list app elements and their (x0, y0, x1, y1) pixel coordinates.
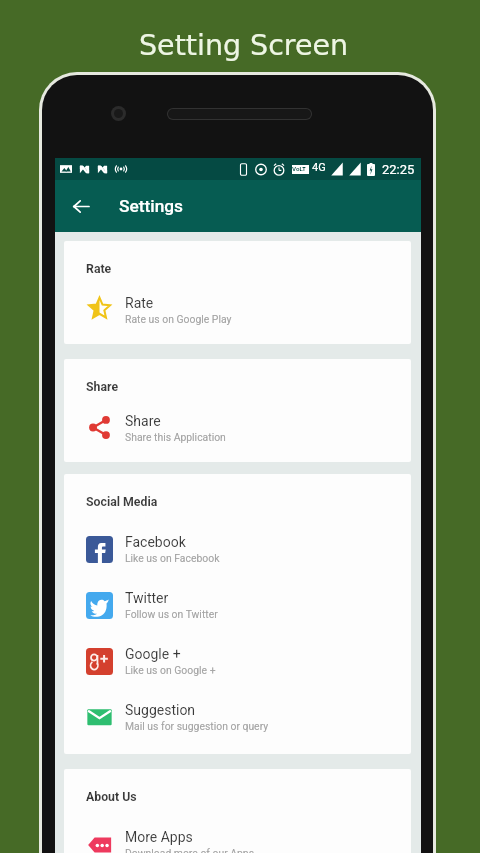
staticText: Like us on Facebook (125, 552, 220, 564)
staticText: Facebook (125, 534, 186, 550)
button[interactable]: Google + (64, 633, 411, 689)
staticText: Rate (125, 295, 154, 311)
button[interactable]: Facebook (64, 521, 411, 577)
staticText: About Us (86, 790, 137, 804)
staticText: Share (125, 413, 161, 429)
staticText: Google + (125, 646, 181, 662)
button[interactable]: Rate (64, 288, 411, 331)
staticText: 4G (312, 161, 326, 174)
staticText: Follow us on Twitter (125, 608, 218, 620)
staticText: Settings (119, 196, 184, 216)
staticText: Download more of our Apps (125, 847, 255, 853)
staticText: 22:25 (382, 162, 415, 177)
staticText: Like us on Google + (125, 664, 216, 676)
button[interactable]: More Apps (64, 816, 411, 853)
staticText: Mail us for suggestion or query (125, 720, 269, 732)
staticText: Rate (86, 262, 112, 276)
staticText: VoLTE (292, 165, 309, 174)
button[interactable]: Back (55, 180, 102, 232)
staticText: Setting Screen (139, 29, 349, 62)
staticText: Social Media (86, 495, 158, 509)
button[interactable]: Share (64, 406, 411, 449)
staticText: More Apps (125, 829, 193, 845)
button[interactable]: Suggestion (64, 689, 411, 745)
staticText: Share this Application (125, 431, 226, 443)
staticText: Rate us on Google Play (125, 313, 232, 325)
staticText: Twitter (125, 590, 169, 606)
button[interactable]: Twitter (64, 577, 411, 633)
staticText: Suggestion (125, 702, 196, 718)
staticText: Share (86, 380, 119, 394)
